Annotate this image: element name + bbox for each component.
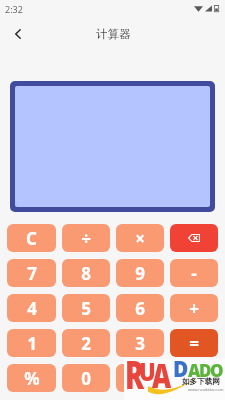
- button[interactable]: 3: [116, 329, 164, 357]
- button[interactable]: 4: [7, 294, 56, 322]
- button[interactable]: =: [170, 329, 218, 357]
- staticText: 1: [27, 332, 37, 355]
- staticText: C: [26, 227, 37, 250]
- button[interactable]: 2: [62, 329, 110, 357]
- staticText: A: [152, 353, 171, 398]
- staticText: -: [191, 262, 197, 285]
- button[interactable]: %: [7, 364, 56, 392]
- button[interactable]: 5: [62, 294, 110, 322]
- button[interactable]: 8: [62, 259, 110, 287]
- staticText: ÷: [81, 227, 91, 250]
- staticText: A: [188, 359, 201, 382]
- button[interactable]: ×: [116, 224, 164, 252]
- button[interactable]: Back: [4, 20, 31, 47]
- staticText: 2:32: [5, 3, 23, 15]
- staticText: D: [199, 359, 212, 382]
- button[interactable]: +: [170, 294, 218, 322]
- staticText: 3: [135, 332, 145, 355]
- staticText: 4: [27, 297, 37, 320]
- staticText: D: [173, 353, 189, 383]
- button[interactable]: ÷: [62, 224, 110, 252]
- staticText: 5: [81, 297, 91, 320]
- button[interactable]: [170, 364, 218, 392]
- staticText: .: [138, 367, 143, 390]
- staticText: U: [139, 355, 156, 388]
- button[interactable]: 6: [116, 294, 164, 322]
- staticText: 2: [81, 332, 91, 355]
- staticText: =: [189, 332, 199, 355]
- staticText: 7: [27, 262, 37, 285]
- staticText: O: [210, 359, 224, 382]
- staticText: ×: [135, 227, 145, 250]
- staticText: R: [125, 348, 144, 400]
- button[interactable]: 7: [7, 259, 56, 287]
- staticText: %: [24, 367, 40, 390]
- staticText: 9: [135, 262, 145, 285]
- button[interactable]: C: [7, 224, 56, 252]
- button[interactable]: -: [170, 259, 218, 287]
- staticText: 0: [81, 367, 91, 390]
- staticText: www.ruadabo.com: [188, 387, 224, 392]
- staticText: 计算器: [96, 27, 131, 41]
- button[interactable]: Backspace: [170, 224, 218, 252]
- button[interactable]: .: [116, 364, 164, 392]
- button[interactable]: 9: [116, 259, 164, 287]
- button[interactable]: 1: [7, 329, 56, 357]
- button[interactable]: 0: [62, 364, 110, 392]
- staticText: 如多下载网: [182, 377, 220, 387]
- staticText: +: [189, 297, 199, 320]
- staticText: 6: [135, 297, 145, 320]
- staticText: 8: [81, 262, 91, 285]
